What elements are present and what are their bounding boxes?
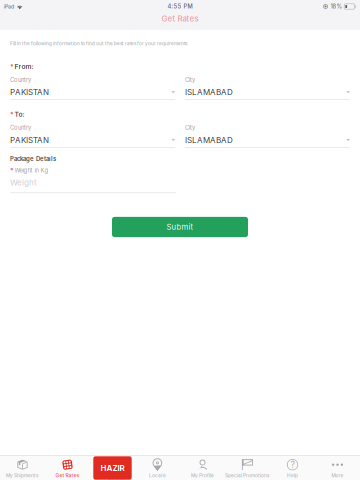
staticText: More	[331, 473, 343, 478]
staticText: Country	[10, 124, 31, 131]
staticText: *	[10, 166, 14, 174]
button[interactable]: Get Rates	[45, 456, 90, 480]
staticText: City	[185, 124, 195, 131]
button[interactable]: City	[185, 76, 350, 100]
staticText: 18%	[331, 3, 343, 10]
staticText: My Profile	[191, 473, 214, 478]
staticText: Get Rates	[55, 473, 79, 478]
staticText: HAZIR	[100, 463, 124, 473]
button[interactable]: City	[185, 124, 350, 148]
staticText: *	[10, 110, 14, 118]
staticText: Get Rates	[161, 14, 198, 23]
staticText: ISLAMABAD	[185, 87, 233, 97]
button[interactable]: Locate	[135, 456, 180, 480]
staticText: 4:55 PM	[167, 3, 192, 10]
button[interactable]: ?	[270, 456, 315, 480]
staticText: iPad	[4, 3, 14, 10]
button[interactable]: Country	[10, 124, 175, 148]
staticText: Special Promotions	[225, 473, 270, 478]
staticText: Submit	[166, 222, 193, 232]
button[interactable]: Submit	[112, 217, 248, 237]
button[interactable]: HAZIR	[90, 456, 135, 480]
staticText: Weight	[10, 178, 37, 188]
button[interactable]: Special Promotions	[225, 456, 270, 480]
staticText: Package Details	[10, 155, 56, 162]
staticText: Help	[287, 473, 298, 478]
staticText: Locate	[149, 473, 166, 478]
staticText: My Shipments	[6, 473, 39, 478]
staticText: PAKISTAN	[10, 87, 49, 97]
staticText: City	[185, 76, 195, 83]
staticText: Country	[10, 76, 31, 83]
staticText: To:	[15, 110, 25, 118]
staticText: ISLAMABAD	[185, 135, 233, 145]
button[interactable]: My Profile	[180, 456, 225, 480]
button[interactable]: My Shipments	[0, 456, 45, 480]
staticText: PAKISTAN	[10, 135, 49, 145]
staticText: *	[10, 63, 14, 71]
button[interactable]: More	[315, 456, 360, 480]
staticText: Fill in the following information to fin…	[10, 41, 187, 46]
staticText: From:	[15, 63, 34, 71]
staticText: ?	[290, 459, 294, 470]
staticText: Weight in Kg	[15, 167, 49, 174]
button[interactable]: Country	[10, 76, 175, 100]
